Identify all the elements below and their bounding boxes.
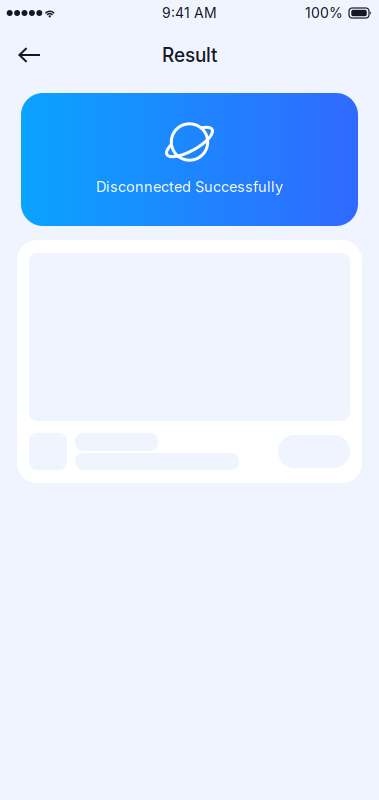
- staticText: 9:41 AM: [162, 4, 217, 21]
- staticText: Result: [162, 43, 217, 66]
- staticText: 100%: [305, 4, 343, 21]
- staticText: Disconnected Successfully: [96, 178, 283, 196]
- button[interactable]: Back: [9, 34, 50, 76]
